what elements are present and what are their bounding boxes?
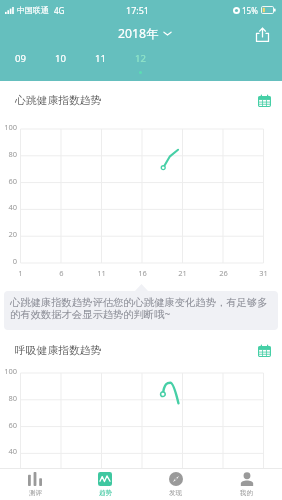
staticText: 40 (8, 446, 17, 456)
button[interactable]: 2018年 (114, 23, 176, 44)
staticText: 20 (8, 229, 17, 239)
staticText: 11 (97, 268, 106, 278)
button[interactable]: 我的 (211, 469, 282, 500)
staticText: 10 (55, 52, 66, 65)
staticText: 100 (4, 366, 17, 376)
staticText: 09 (15, 52, 26, 65)
staticText: 21 (178, 268, 187, 278)
staticText: 中国联通 (17, 5, 49, 15)
staticText: 16 (138, 268, 147, 278)
staticText: 80 (8, 393, 17, 403)
staticText: 11 (95, 52, 106, 65)
button[interactable]: 测评 (0, 469, 70, 500)
staticText: 趋势 (99, 489, 112, 497)
button[interactable]: 12 (120, 47, 160, 81)
staticText: 26 (219, 268, 228, 278)
staticText: 发现 (169, 489, 182, 497)
staticText: 呼吸健康指数趋势 (15, 344, 102, 358)
button[interactable]: 11 (80, 47, 120, 81)
staticText: 我的 (240, 489, 253, 497)
staticText: 15% (242, 5, 258, 16)
button[interactable]: 10 (40, 47, 80, 81)
button[interactable]: Select date (254, 91, 274, 111)
staticText: 心跳健康指数趋势 (15, 94, 102, 108)
staticText: 6 (59, 268, 64, 278)
button[interactable]: Select date (254, 341, 274, 361)
staticText: 0 (12, 256, 17, 266)
button[interactable]: 发现 (140, 469, 211, 500)
staticText: 100 (4, 122, 17, 132)
button[interactable]: 09 (0, 47, 40, 81)
staticText: 40 (8, 202, 17, 212)
staticText: 80 (8, 149, 17, 159)
button[interactable]: 趋势 (70, 469, 140, 500)
button[interactable]: Share (250, 22, 274, 46)
staticText: 31 (259, 268, 268, 278)
staticText: 测评 (29, 489, 42, 497)
staticText: 4G (54, 5, 65, 16)
staticText: 12 (135, 52, 146, 65)
staticText: 1 (18, 268, 23, 278)
staticText: 60 (8, 176, 17, 186)
staticText: 60 (8, 420, 17, 430)
staticText: 2018年 (118, 25, 159, 42)
staticText: 心跳健康指数趋势评估您的心跳健康变化趋势，有足够多的有效数据才会显示趋势的判断哦… (10, 296, 275, 321)
staticText: 17:51 (126, 4, 150, 16)
